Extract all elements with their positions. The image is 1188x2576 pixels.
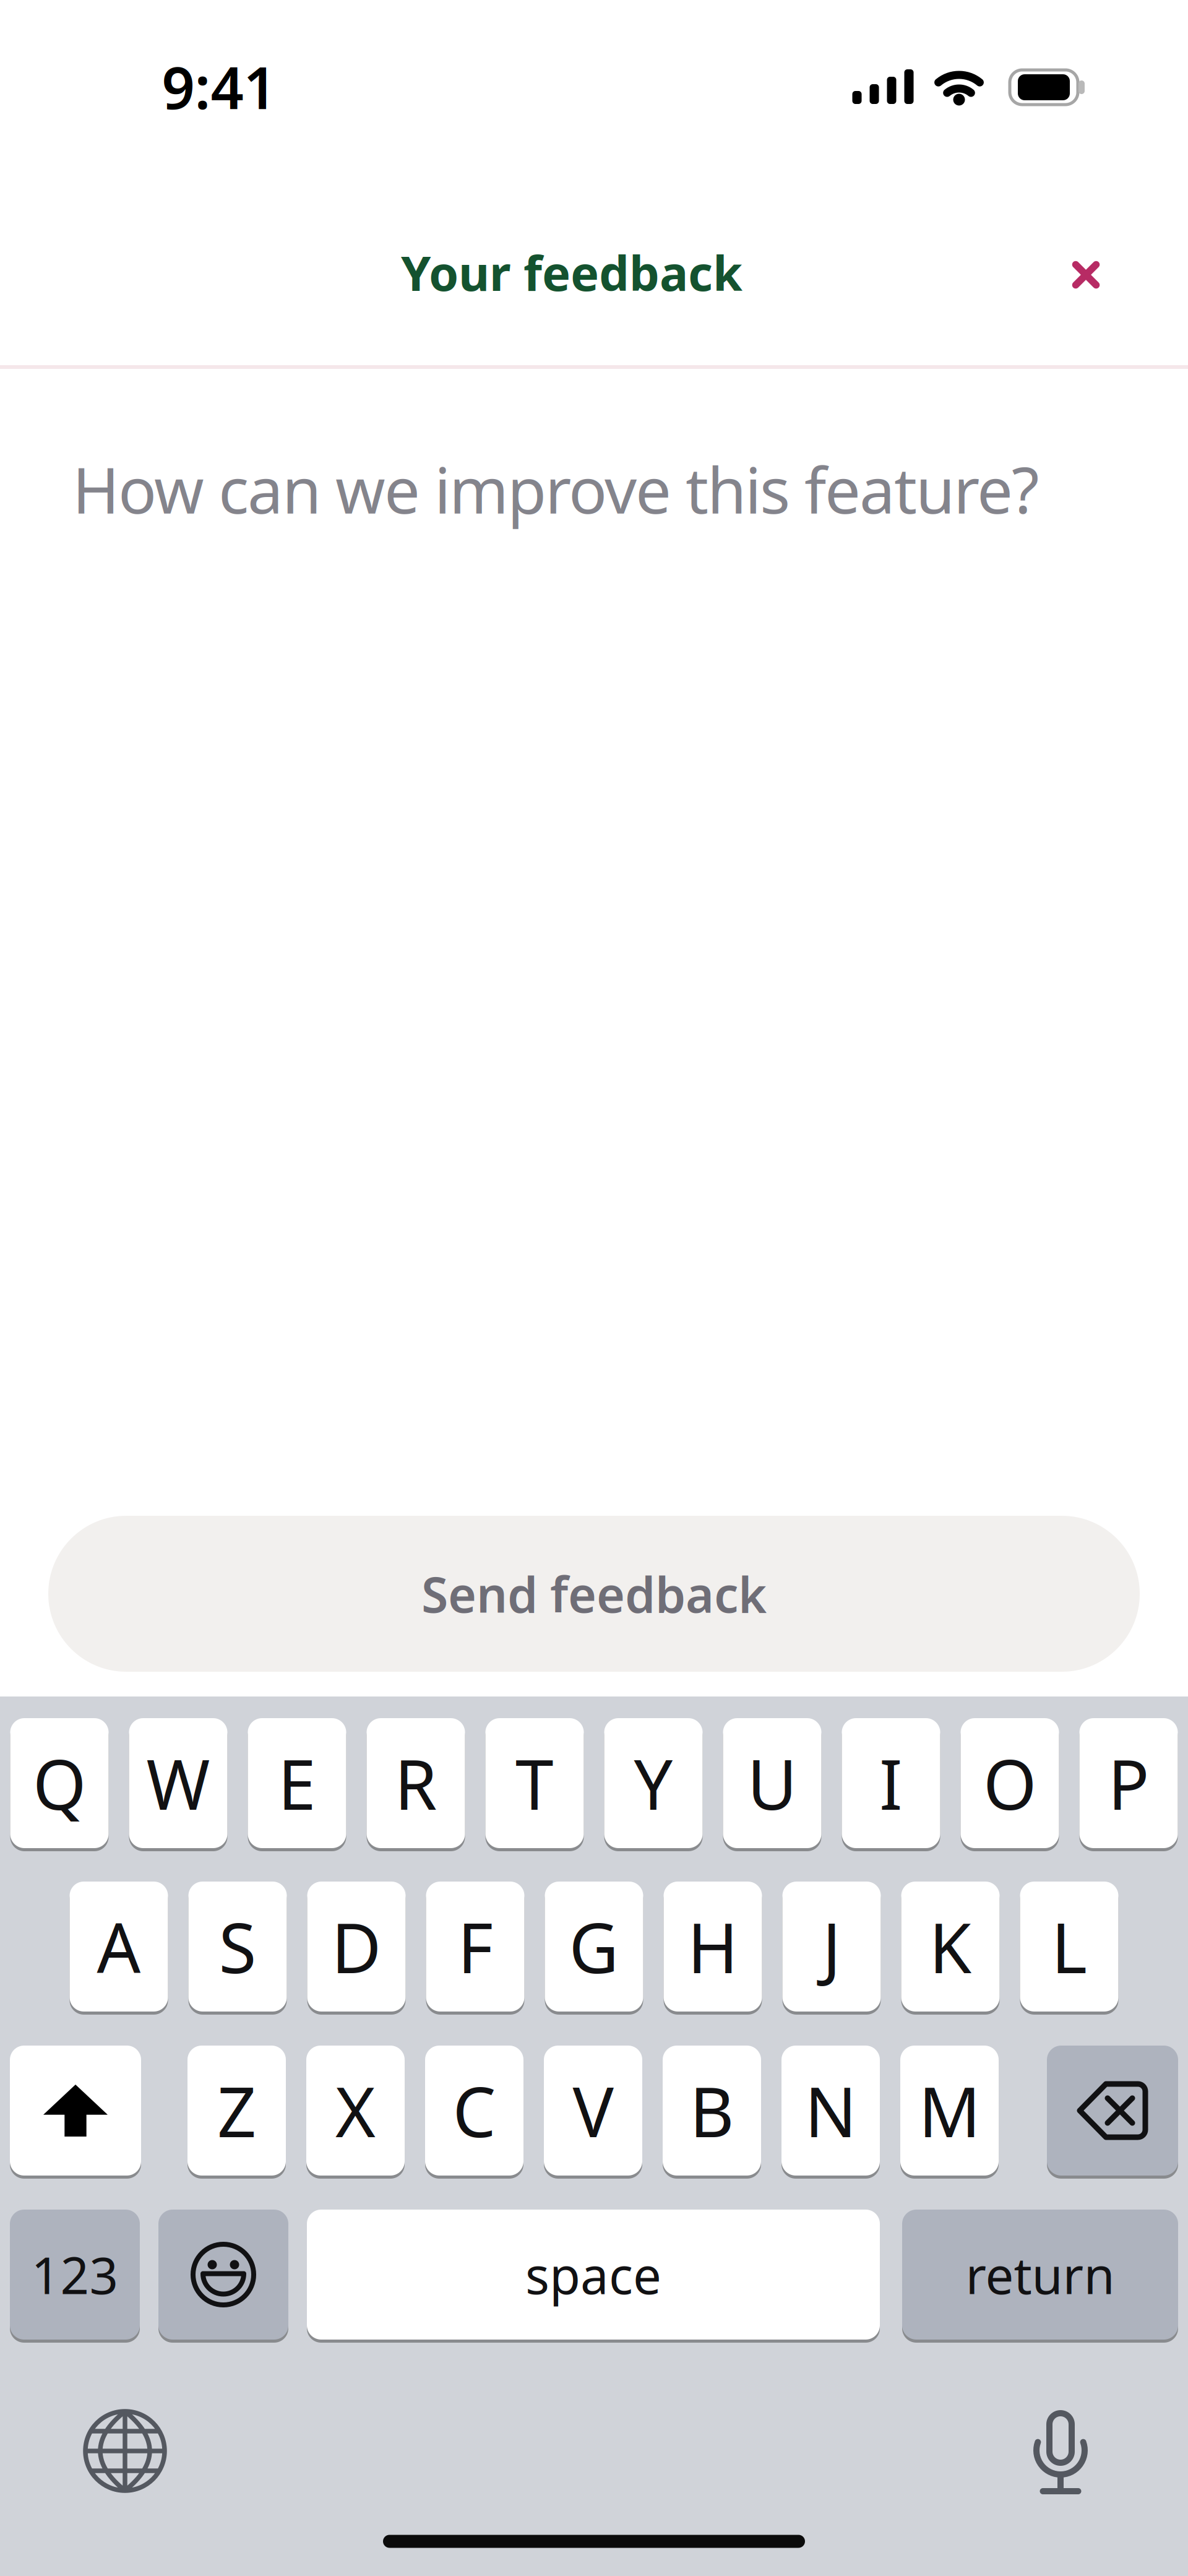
button[interactable]: B: [663, 2046, 761, 2176]
button[interactable]: Z: [187, 2046, 286, 2176]
button[interactable]: K: [901, 1882, 1000, 2012]
button[interactable]: U: [723, 1718, 821, 1848]
button[interactable]: N: [781, 2046, 880, 2176]
button[interactable]: P: [1079, 1718, 1178, 1848]
staticText: Y: [634, 1738, 673, 1829]
staticText: G: [569, 1901, 619, 1992]
button[interactable]: Next keyboard: [85, 2411, 165, 2491]
staticText: T: [515, 1738, 554, 1829]
staticText: B: [690, 2065, 734, 2156]
button[interactable]: Shift: [10, 2046, 141, 2176]
button[interactable]: D: [307, 1882, 406, 2012]
staticText: P: [1108, 1738, 1149, 1829]
staticText: Send feedback: [421, 1561, 767, 1626]
button[interactable]: R: [367, 1718, 465, 1848]
button[interactable]: O: [961, 1718, 1059, 1848]
staticText: K: [929, 1901, 972, 1992]
button[interactable]: G: [545, 1882, 643, 2012]
staticText: L: [1051, 1901, 1087, 1992]
button[interactable]: Y: [604, 1718, 703, 1848]
staticText: space: [525, 2241, 661, 2308]
staticText: O: [983, 1738, 1036, 1829]
button[interactable]: I: [842, 1718, 940, 1848]
button[interactable]: Space: [307, 2210, 880, 2340]
button[interactable]: T: [485, 1718, 584, 1848]
staticText: Z: [217, 2065, 256, 2156]
button[interactable]: V: [544, 2046, 642, 2176]
staticText: I: [879, 1738, 903, 1829]
staticText: M: [919, 2065, 980, 2156]
button[interactable]: X: [306, 2046, 405, 2176]
button[interactable]: Dictation: [1032, 2408, 1089, 2495]
button[interactable]: Return: [902, 2210, 1178, 2340]
staticText: return: [966, 2241, 1115, 2308]
staticText: 9:41: [162, 48, 276, 125]
staticText: 123: [31, 2241, 118, 2308]
button[interactable]: H: [664, 1882, 762, 2012]
button[interactable]: E: [248, 1718, 346, 1848]
button[interactable]: Emoji: [158, 2210, 288, 2340]
button[interactable]: Close: [1057, 246, 1115, 304]
staticText: F: [458, 1901, 493, 1992]
button[interactable]: Numbers: [10, 2210, 140, 2340]
staticText: Your feedback: [401, 241, 742, 304]
button[interactable]: L: [1020, 1882, 1118, 2012]
button[interactable]: Send feedback: [48, 1516, 1140, 1672]
staticText: S: [219, 1901, 256, 1992]
staticText: X: [335, 2065, 376, 2156]
button[interactable]: M: [900, 2046, 999, 2176]
staticText: How can we improve this feature?: [72, 447, 1039, 531]
staticText: J: [822, 1901, 841, 1992]
button[interactable]: Delete: [1047, 2046, 1178, 2176]
staticText: V: [573, 2065, 613, 2156]
staticText: E: [278, 1738, 316, 1829]
staticText: U: [747, 1738, 797, 1829]
button[interactable]: S: [188, 1882, 287, 2012]
staticText: N: [805, 2065, 857, 2156]
staticText: W: [146, 1738, 210, 1829]
button[interactable]: A: [70, 1882, 168, 2012]
button[interactable]: W: [129, 1718, 227, 1848]
button[interactable]: Q: [10, 1718, 109, 1848]
button[interactable]: J: [782, 1882, 881, 2012]
button[interactable]: C: [425, 2046, 523, 2176]
staticText: C: [453, 2065, 496, 2156]
staticText: D: [331, 1901, 381, 1992]
button[interactable]: F: [426, 1882, 524, 2012]
staticText: Q: [33, 1738, 86, 1829]
staticText: A: [97, 1901, 141, 1992]
staticText: H: [687, 1901, 738, 1992]
staticText: R: [394, 1738, 437, 1829]
